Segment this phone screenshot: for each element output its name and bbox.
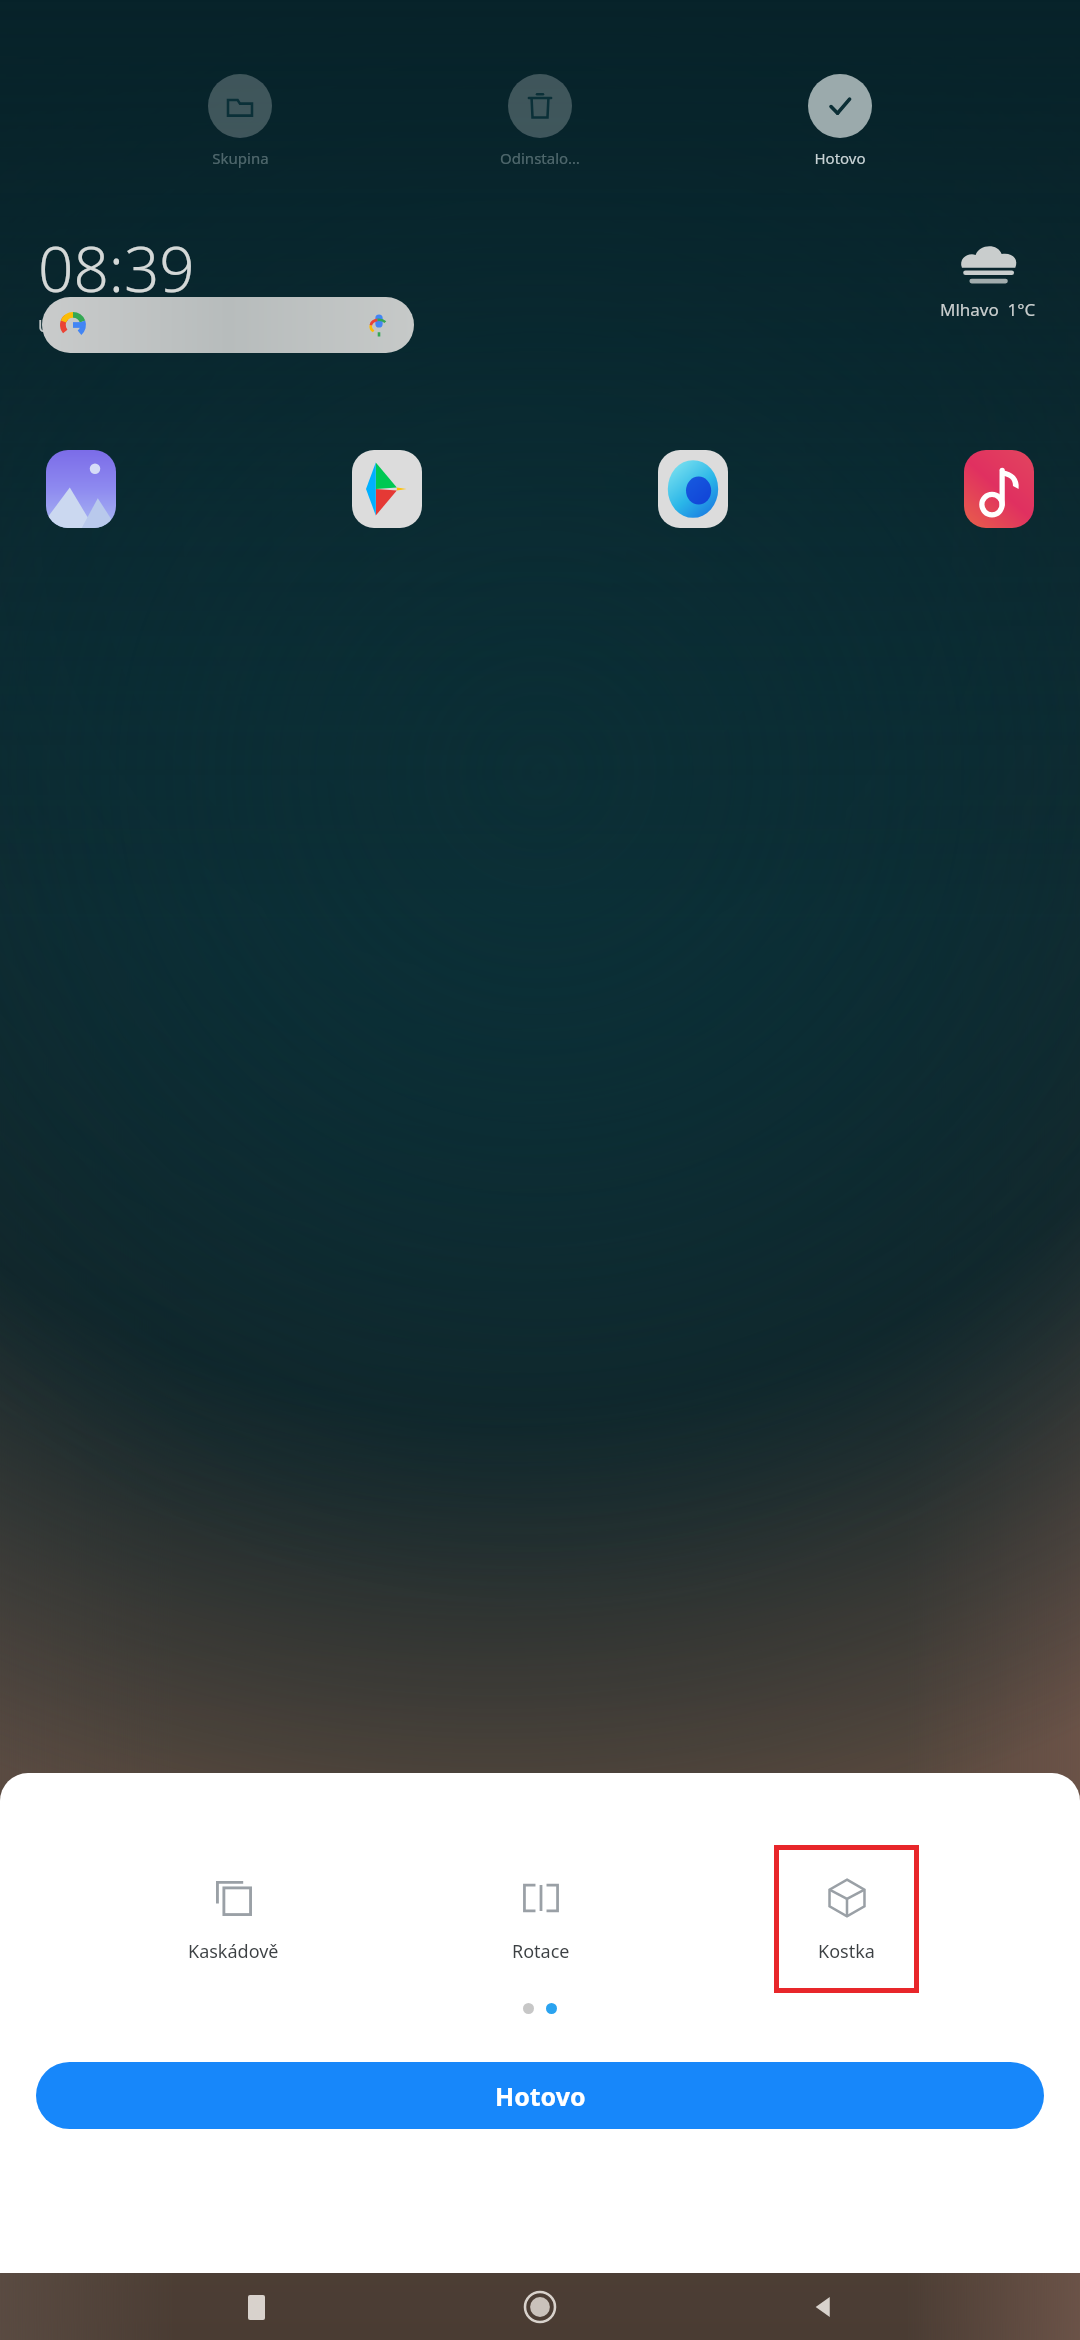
button[interactable]: Home: [512, 2279, 568, 2335]
button[interactable]: Hotovo: [36, 2062, 1044, 2129]
button[interactable]: Skupina: [180, 72, 300, 170]
button[interactable]: Kostka: [774, 1845, 919, 1993]
button[interactable]: Music: [964, 450, 1034, 528]
button[interactable]: Browser: [658, 450, 728, 528]
other: Google search: [60, 312, 86, 338]
staticText: Úte, 20. říjen: [38, 314, 140, 337]
button[interactable]: Rotace: [468, 1845, 613, 1993]
button[interactable]: Play Store: [352, 450, 422, 528]
staticText: Skupina: [212, 148, 269, 168]
staticText: Kostka: [818, 1939, 875, 1964]
staticText: Mlhavo 1°C: [940, 298, 1036, 321]
other: Voice search: [366, 312, 392, 338]
button[interactable]: Kaskádově: [161, 1845, 306, 1993]
button[interactable]: Odinstalo…: [480, 72, 600, 170]
staticText: Odinstalo…: [500, 148, 580, 168]
button[interactable]: Back: [796, 2279, 852, 2335]
staticText: Kaskádově: [188, 1939, 279, 1964]
button[interactable]: Recent apps: [228, 2279, 284, 2335]
button[interactable]: Hotovo: [780, 72, 900, 170]
staticText: Hotovo: [495, 2079, 586, 2113]
staticText: Rotace: [512, 1939, 570, 1964]
button[interactable]: Google search: [42, 297, 414, 353]
staticText: Hotovo: [814, 148, 866, 168]
staticText: 08:39: [38, 226, 195, 310]
button[interactable]: Gallery: [46, 450, 116, 528]
